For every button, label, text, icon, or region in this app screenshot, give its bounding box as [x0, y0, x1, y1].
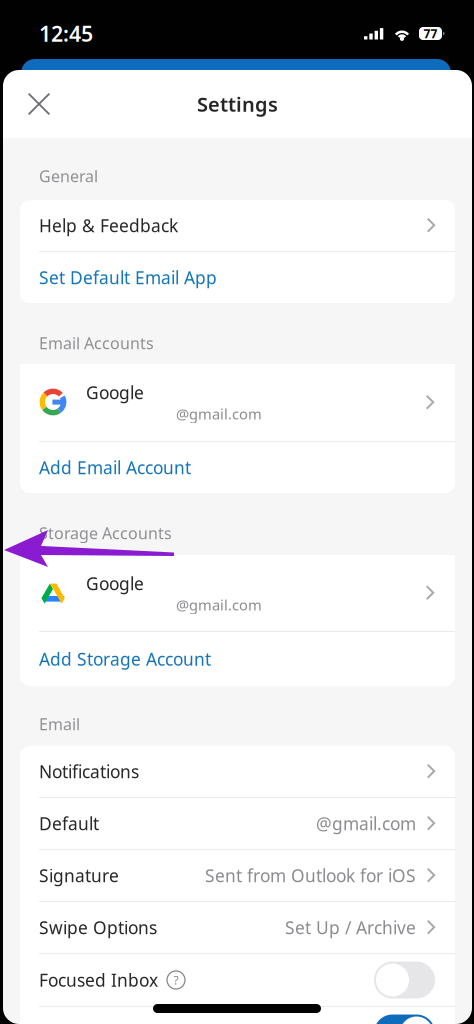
- button[interactable]: Notifications: [20, 746, 455, 797]
- staticText: Storage Accounts: [39, 522, 172, 544]
- staticText: @gmail.com: [176, 404, 262, 423]
- staticText: Google: [86, 572, 144, 595]
- staticText: Set Default Email App: [39, 266, 217, 289]
- staticText: Swipe Options: [39, 916, 157, 939]
- staticText: Default: [39, 812, 99, 835]
- staticText: Google: [86, 381, 144, 404]
- staticText: @gmail.com: [176, 595, 262, 614]
- button[interactable]: Off: [374, 961, 435, 998]
- staticText: General: [39, 165, 98, 187]
- button[interactable]: Help & Feedback: [20, 200, 455, 251]
- staticText: Signature: [39, 864, 119, 887]
- button[interactable]: Add Storage Account: [20, 632, 455, 686]
- staticText: Add Storage Account: [39, 647, 211, 670]
- staticText: Set Up / Archive: [285, 916, 416, 939]
- staticText: @gmail.com: [316, 812, 416, 835]
- button[interactable]: Set Default Email App: [20, 252, 455, 303]
- button[interactable]: Signature: [20, 850, 455, 901]
- staticText: Sent from Outlook for iOS: [205, 864, 416, 887]
- button[interactable]: Default: [20, 798, 455, 849]
- staticText: Add Email Account: [39, 456, 191, 479]
- staticText: Email: [39, 713, 80, 735]
- button[interactable]: Google: [20, 364, 455, 441]
- button[interactable]: On: [374, 1014, 435, 1024]
- button[interactable]: Add Email Account: [20, 442, 455, 493]
- button[interactable]: Google: [20, 555, 455, 631]
- staticText: Notifications: [39, 760, 139, 783]
- button[interactable]: Close: [15, 80, 63, 128]
- button[interactable]: Swipe Options: [20, 902, 455, 953]
- staticText: ?: [173, 972, 178, 988]
- staticText: Email Accounts: [39, 332, 154, 354]
- staticText: Help & Feedback: [39, 214, 178, 237]
- staticText: Focused Inbox: [39, 968, 158, 991]
- staticText: 77: [423, 25, 437, 41]
- staticText: 12:45: [39, 19, 93, 48]
- staticText: Settings: [197, 91, 278, 117]
